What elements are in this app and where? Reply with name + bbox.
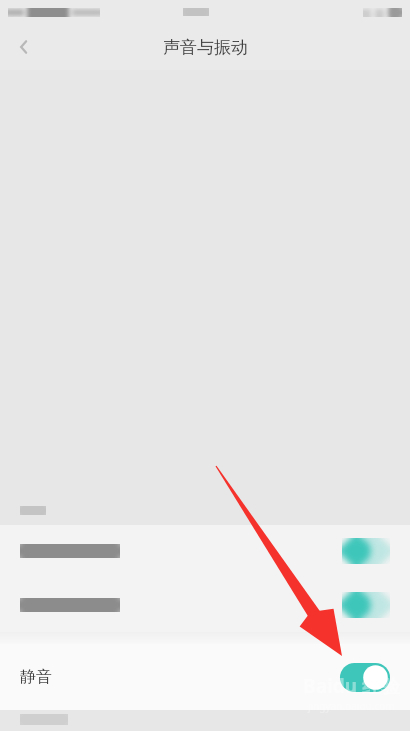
button[interactable]: 静音 bbox=[0, 644, 410, 710]
staticText: 静音 bbox=[20, 667, 52, 687]
staticText: jingyan.baidu.com bbox=[308, 699, 395, 713]
staticText: Baidu 经验 bbox=[303, 673, 400, 699]
button[interactable] bbox=[0, 525, 410, 577]
staticText: 声音与振动 bbox=[163, 37, 248, 58]
button[interactable] bbox=[0, 577, 410, 632]
button[interactable]: Back bbox=[0, 24, 48, 70]
button[interactable]: Mute toggle, on bbox=[340, 663, 390, 692]
